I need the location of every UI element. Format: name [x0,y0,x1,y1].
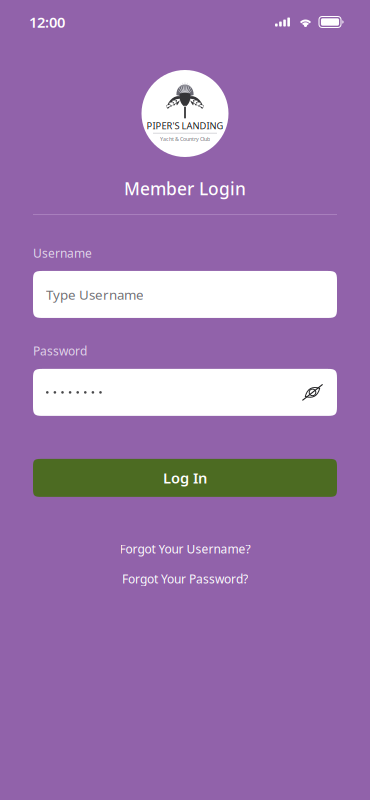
staticText: Forgot Your Password? [122,571,248,587]
staticText: PIPER'S LANDING [146,119,223,132]
staticText: 12:00 [29,12,65,32]
staticText: Yacht & Country Club [160,135,210,143]
staticText: Username [33,245,92,261]
staticText: Forgot Your Username? [119,541,250,557]
staticText: Password [33,343,87,359]
button[interactable]: Log In [33,459,337,497]
staticText: Member Login [124,177,246,200]
button[interactable]: Forgot Your Password? [122,571,248,587]
button[interactable]: Show password [291,383,324,401]
staticText: Log In [163,468,207,488]
staticText: Type Username [46,286,144,303]
button[interactable]: Forgot Your Username? [119,541,250,557]
